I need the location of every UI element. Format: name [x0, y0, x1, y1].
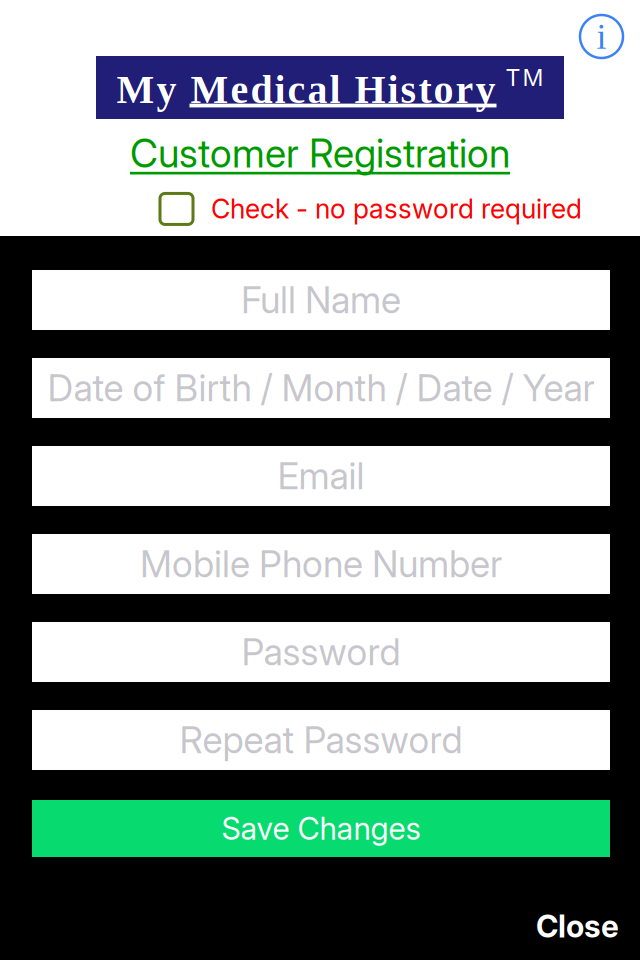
staticText: Password	[241, 630, 400, 674]
button[interactable]: Password	[32, 622, 610, 682]
button[interactable]: Email	[32, 446, 610, 506]
staticText: My Medical History TM	[116, 64, 543, 111]
staticText: Check - no password required	[211, 193, 582, 225]
button[interactable]: Check - no password required	[160, 193, 193, 224]
button[interactable]: Save Changes	[32, 800, 610, 857]
button[interactable]: Full Name	[32, 270, 610, 330]
button[interactable]: Date of Birth / Month / Date / Year	[32, 358, 610, 418]
staticText: Mobile Phone Number	[140, 542, 502, 586]
staticText: Close	[536, 908, 619, 945]
staticText: Save Changes	[221, 810, 420, 847]
staticText: Customer Registration	[130, 130, 510, 177]
button[interactable]: Repeat Password	[32, 710, 610, 770]
staticText: Date of Birth / Month / Date / Year	[47, 366, 594, 410]
staticText: Repeat Password	[179, 718, 462, 762]
staticText: Email	[277, 454, 364, 498]
button[interactable]: Information	[580, 15, 623, 58]
button[interactable]: Mobile Phone Number	[32, 534, 610, 594]
staticText: i	[596, 17, 606, 56]
staticText: Full Name	[241, 278, 401, 322]
button[interactable]: Close	[536, 908, 619, 945]
